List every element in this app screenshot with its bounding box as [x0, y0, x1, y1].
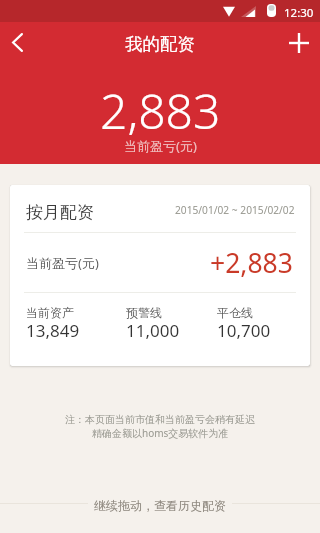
- staticText: 继续拖动，查看历史配资: [94, 498, 226, 513]
- staticText: +2,883: [210, 245, 293, 281]
- staticText: 平仓线: [217, 305, 253, 320]
- staticText: 2,883: [100, 78, 221, 143]
- button[interactable]: Back: [0, 22, 44, 66]
- staticText: 13,849: [26, 319, 80, 342]
- staticText: 当前盈亏(元): [26, 254, 99, 272]
- staticText: 我的配资: [125, 33, 195, 55]
- staticText: 精确金额以homs交易软件为准: [92, 426, 229, 440]
- staticText: 12:30: [284, 5, 314, 21]
- staticText: 2015/01/02 ~ 2015/02/02: [175, 203, 295, 217]
- button[interactable]: Add: [276, 22, 320, 66]
- staticText: 按月配资: [26, 202, 94, 223]
- staticText: 11,000: [126, 319, 180, 342]
- staticText: 预警线: [126, 305, 162, 320]
- staticText: 注：本页面当前市值和当前盈亏会稍有延迟: [65, 413, 255, 426]
- staticText: 10,700: [217, 319, 271, 342]
- staticText: 当前资产: [26, 305, 74, 320]
- staticText: 当前盈亏(元): [124, 137, 197, 155]
